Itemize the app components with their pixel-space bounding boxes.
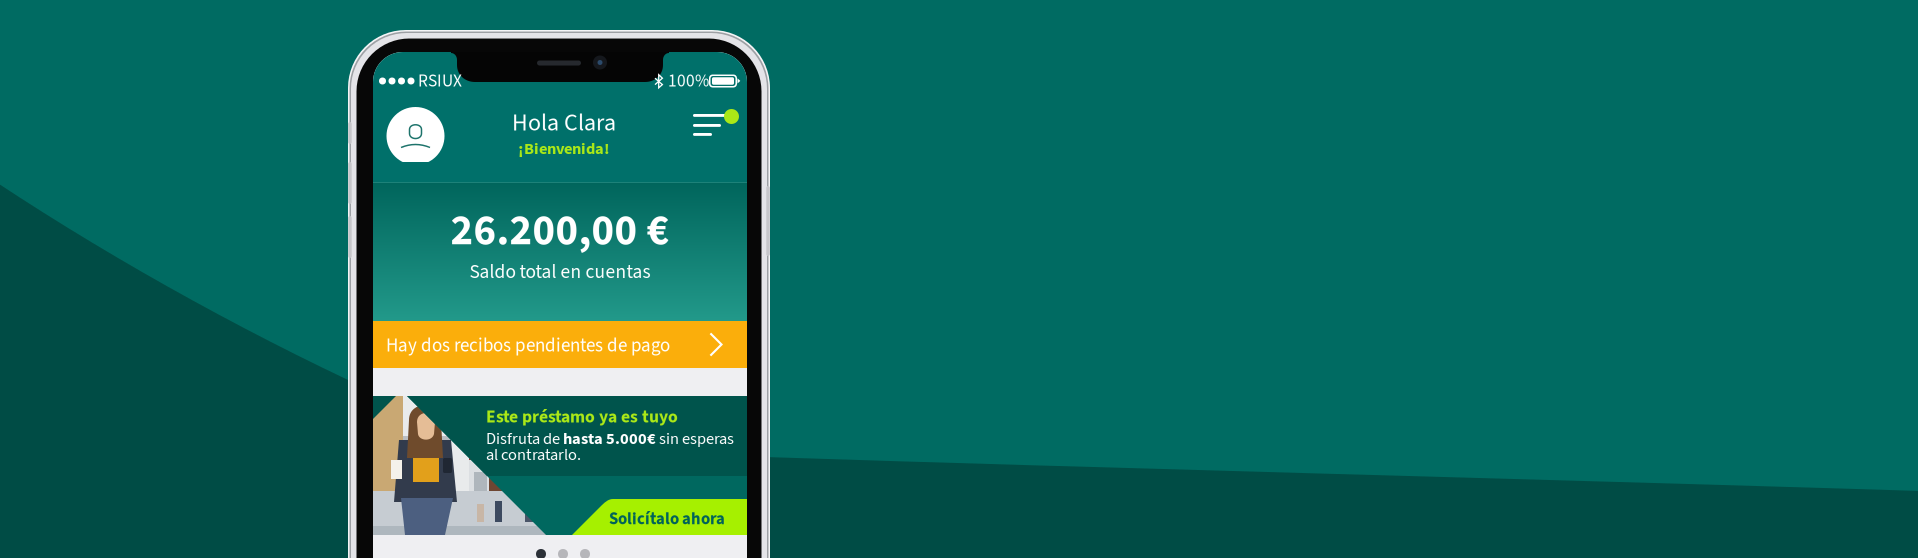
staticText: Solicítalo ahora [609, 507, 725, 531]
button[interactable]: Menú [693, 109, 743, 141]
button[interactable]: Este préstamo ya es tuyo [373, 396, 747, 535]
staticText: 100% [668, 69, 709, 93]
staticText: Hay dos recibos pendientes de pago [386, 332, 670, 359]
button[interactable]: Página 1 [536, 549, 546, 558]
staticText: 26.200,00 € [450, 201, 669, 261]
staticText: Disfruta de hasta 5.000€ sin esperas [486, 428, 734, 450]
staticText: Saldo total en cuentas [469, 258, 650, 286]
staticText: al contratarlo. [486, 443, 581, 467]
staticText: ¡Bienvenida! [518, 137, 610, 161]
button[interactable]: Página 3 [580, 549, 590, 558]
button[interactable]: Hay dos recibos pendientes de pago [373, 321, 747, 368]
staticText: RSIUX [418, 69, 462, 93]
button[interactable]: Perfil [386, 107, 444, 165]
button[interactable]: Página 2 [558, 549, 568, 558]
staticText: Hola Clara [512, 106, 616, 140]
staticText: Este préstamo ya es tuyo [486, 404, 678, 430]
